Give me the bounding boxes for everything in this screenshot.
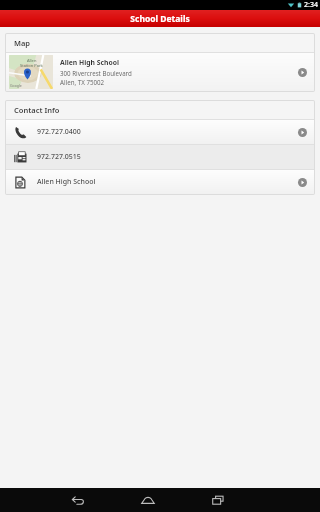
staticText: School Details: [130, 13, 190, 25]
button[interactable]: Google: [6, 53, 314, 91]
staticText: Map: [14, 38, 31, 48]
staticText: Allen High School: [37, 177, 298, 187]
staticText: 300 Rivercrest Boulevard: [60, 69, 132, 77]
staticText: 2:34: [304, 0, 318, 10]
staticText: 972.727.0515: [37, 152, 307, 162]
staticText: 972.727.0400: [37, 127, 298, 137]
staticText: Contact Info: [14, 105, 60, 115]
button[interactable]: Fax 972.727.0515: [6, 145, 314, 169]
button[interactable]: School Details: [0, 10, 320, 27]
staticText: Allen, TX 75002: [60, 78, 105, 86]
button[interactable]: Call 972.727.0400: [6, 120, 314, 144]
staticText: Google: [10, 83, 22, 88]
staticText: Allen High School: [60, 58, 119, 67]
staticText: Allen: [27, 58, 37, 63]
button[interactable]: Home: [133, 489, 163, 511]
staticText: Station Park: [20, 63, 43, 68]
button[interactable]: Open website: [6, 170, 314, 194]
button[interactable]: Back: [63, 489, 93, 511]
button[interactable]: Recent apps: [203, 489, 233, 511]
